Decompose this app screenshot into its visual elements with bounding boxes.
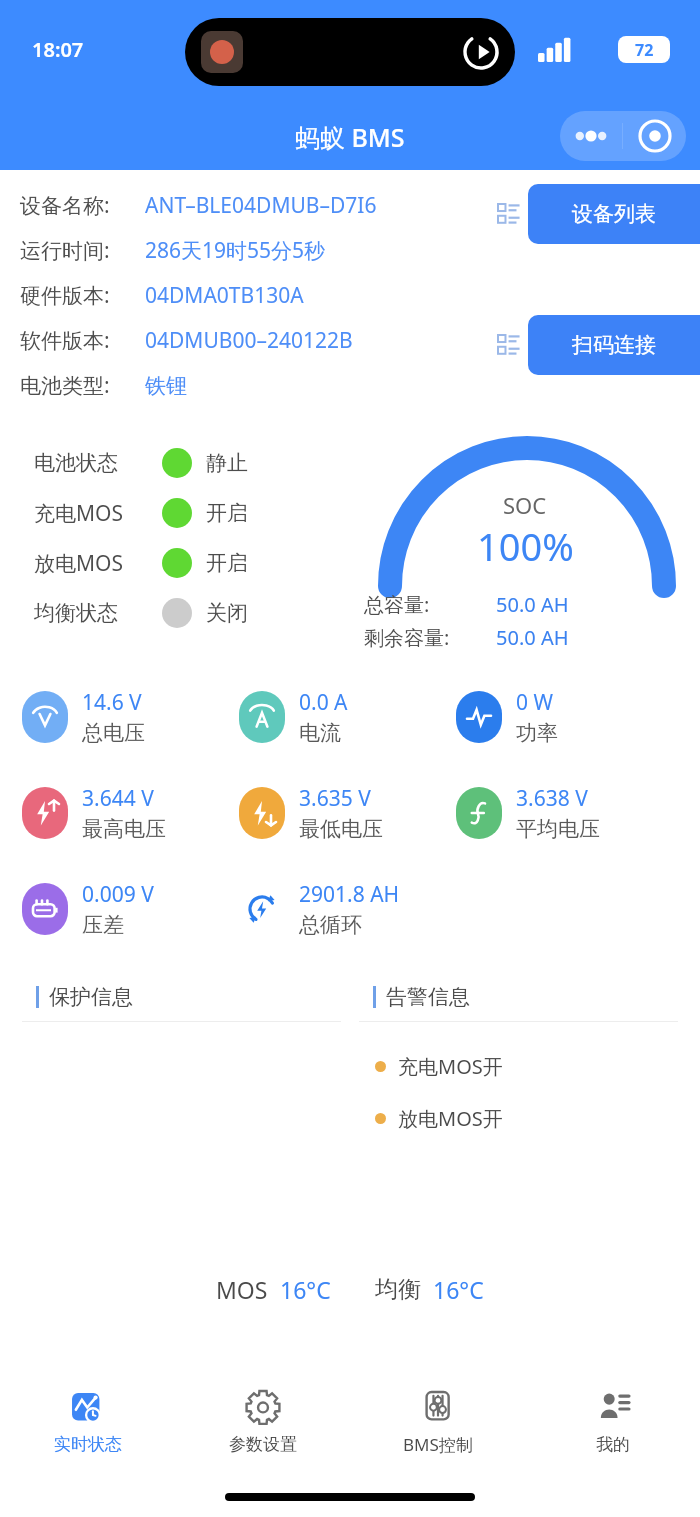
staticText: 电流 (299, 720, 341, 746)
button[interactable]: 实时状态 (0, 1367, 175, 1477)
staticText: 电池状态 (34, 450, 162, 476)
staticText: 总循环 (299, 912, 362, 938)
staticText: 告警信息 (386, 984, 470, 1010)
button[interactable]: 参数设置 (175, 1367, 350, 1477)
staticText: 静止 (206, 450, 248, 476)
staticText: 平均电压 (516, 816, 600, 842)
staticText: 我的 (596, 1434, 630, 1455)
staticText: 2901.8 AH (299, 880, 400, 909)
staticText: 16°C (433, 1274, 484, 1305)
staticText: ANT–BLE04DMUB–D7I6 (145, 191, 377, 220)
button[interactable]: 3.635 V (239, 765, 383, 861)
staticText: 总电压 (82, 720, 145, 746)
staticText: 04DMUB00–240122B (145, 326, 353, 355)
staticText: 最低电压 (299, 816, 383, 842)
staticText: 100% (477, 520, 574, 572)
staticText: 286天19时55分5秒 (145, 236, 326, 265)
staticText: 运行时间: (20, 236, 145, 265)
staticText: 软件版本: (20, 326, 145, 355)
staticText: 剩余容量: (364, 624, 496, 651)
button[interactable]: Target (623, 111, 686, 161)
staticText: 关闭 (206, 600, 248, 626)
staticText: 压差 (82, 912, 124, 938)
button[interactable]: 我的 (525, 1367, 700, 1477)
staticText: 最高电压 (82, 816, 166, 842)
button[interactable]: 设备列表 (528, 184, 700, 244)
staticText: 电池类型: (20, 371, 145, 400)
button[interactable]: 2901.8 AH (239, 861, 400, 957)
staticText: 总容量: (364, 591, 496, 618)
staticText: MOS (216, 1274, 268, 1305)
button[interactable]: More (560, 111, 622, 161)
staticText: 72 (635, 39, 654, 61)
staticText: 0 W (516, 688, 554, 717)
staticText: 0.0 A (299, 688, 348, 717)
staticText: 16°C (280, 1274, 331, 1305)
staticText: 参数设置 (229, 1434, 297, 1455)
button[interactable]: 0.0 A (239, 669, 348, 765)
staticText: 均衡状态 (34, 600, 162, 626)
staticText: 3.644 V (82, 784, 154, 813)
staticText: 充电MOS (34, 499, 162, 528)
button[interactable]: 0 W (456, 669, 558, 765)
staticText: 3.638 V (516, 784, 588, 813)
button[interactable]: 0.009 V (22, 861, 154, 957)
staticText: 扫码连接 (572, 332, 656, 358)
staticText: 铁锂 (145, 373, 187, 399)
staticText: SOC (503, 490, 547, 520)
staticText: 50.0 AH (496, 624, 569, 651)
staticText: 开启 (206, 550, 248, 576)
button[interactable]: 保护信息 (22, 973, 341, 1248)
staticText: 放电MOS (34, 549, 162, 578)
button[interactable]: 3.638 V (456, 765, 600, 861)
staticText: 开启 (206, 500, 248, 526)
button[interactable]: 3.644 V (22, 765, 166, 861)
staticText: 18:07 (32, 36, 84, 63)
staticText: 设备名称: (20, 191, 145, 220)
staticText: 设备列表 (572, 201, 656, 227)
staticText: 50.0 AH (496, 591, 569, 618)
staticText: BMS控制 (403, 1433, 473, 1456)
staticText: 放电MOS开 (398, 1105, 503, 1132)
button[interactable]: 14.6 V (22, 669, 145, 765)
staticText: 硬件版本: (20, 281, 145, 310)
staticText: 3.635 V (299, 784, 371, 813)
staticText: 蚂蚁 BMS (295, 120, 405, 154)
staticText: 0.009 V (82, 880, 154, 909)
button[interactable]: 告警信息 (359, 973, 678, 1248)
staticText: 均衡 (375, 1275, 421, 1304)
staticText: 实时状态 (54, 1434, 122, 1455)
button[interactable]: 扫码连接 (528, 315, 700, 375)
staticText: 充电MOS开 (398, 1053, 503, 1080)
staticText: 功率 (516, 720, 558, 746)
staticText: 04DMA0TB130A (145, 281, 304, 310)
staticText: 保护信息 (49, 984, 133, 1010)
button[interactable]: BMS控制 (350, 1367, 525, 1477)
staticText: 14.6 V (82, 688, 142, 717)
